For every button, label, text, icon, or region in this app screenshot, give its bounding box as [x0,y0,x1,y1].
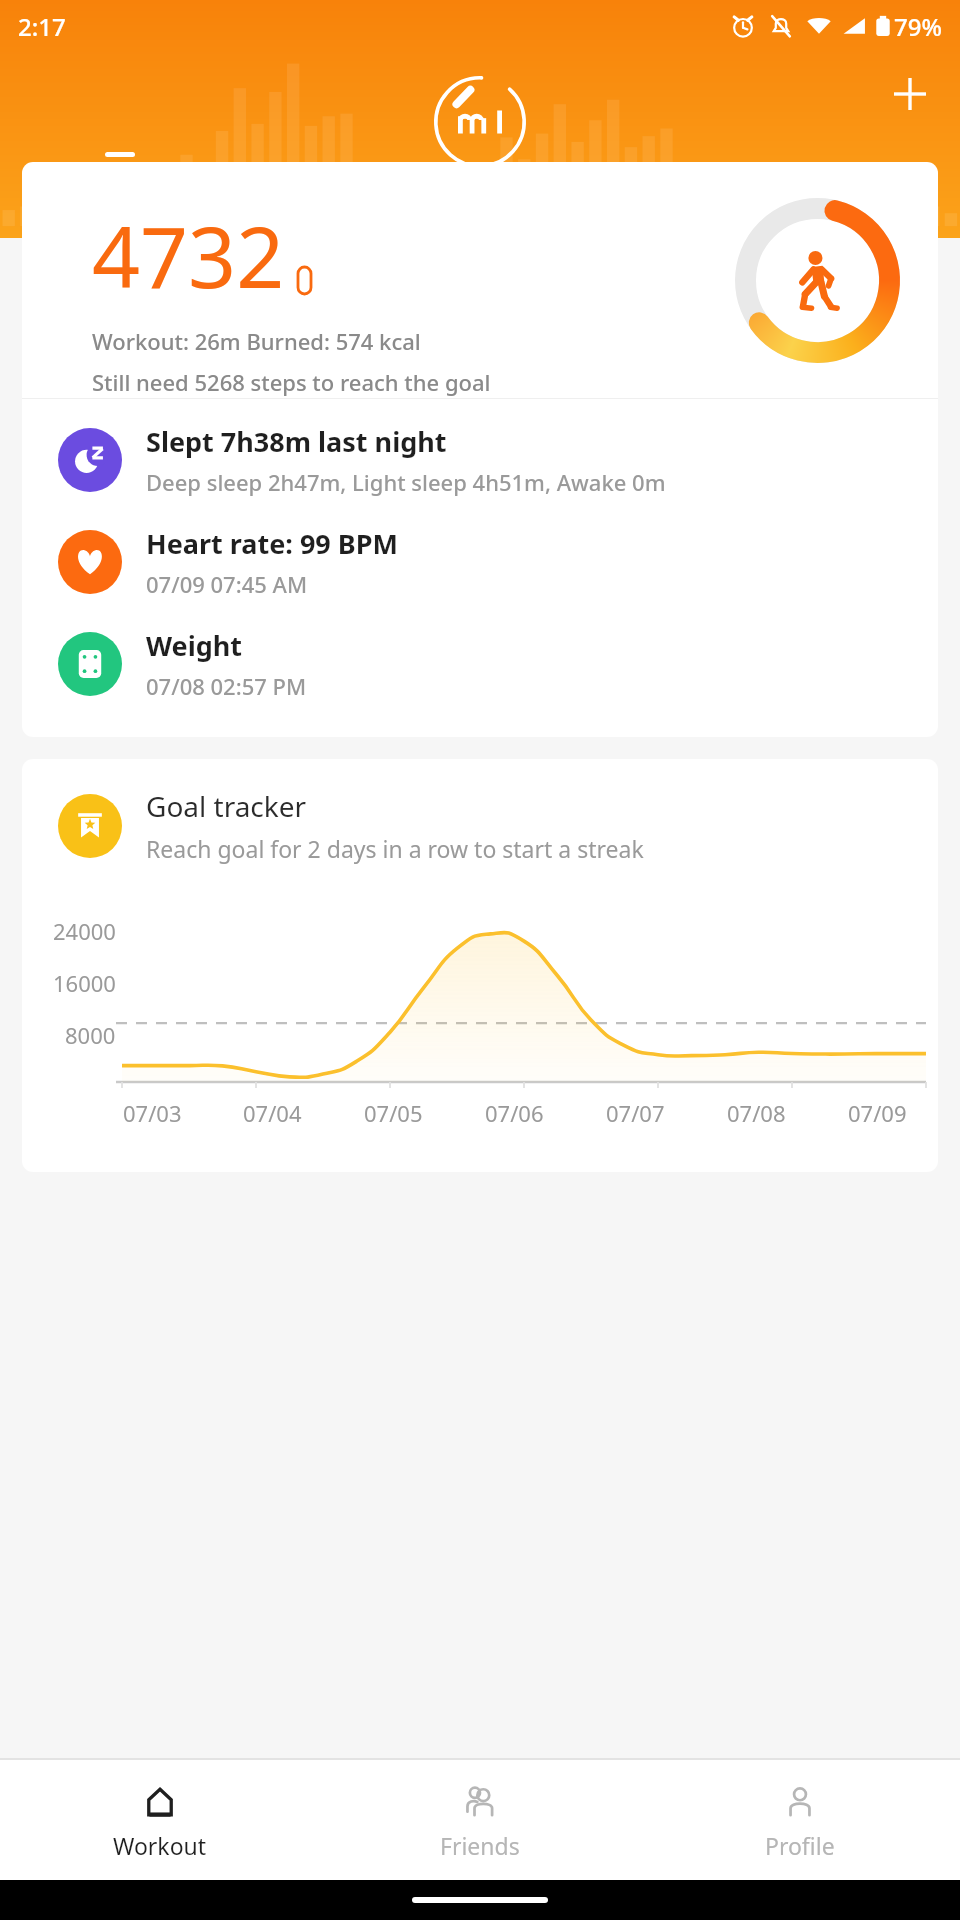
staticText: Heart rate: 99 BPM [146,525,398,562]
staticText: 07/09 07:45 AM [146,569,308,599]
staticText: 07/06 [485,1098,544,1128]
button[interactable]: Heart rate: 99 BPM [22,525,938,599]
staticText: 07/05 [364,1098,423,1128]
button[interactable]: Status [0,152,240,238]
staticText: 07/08 02:57 PM [146,671,307,701]
button[interactable]: Walking [240,152,480,238]
staticText: Still need 5268 steps to reach the goal [92,367,491,397]
staticText: Slept 7h38m last night [146,423,447,460]
staticText: Cycling [803,174,878,204]
button[interactable]: Weight [22,627,938,701]
staticText: Deep sleep 2h47m, Light sleep 4h51m, Awa… [146,467,666,497]
button[interactable]: Goal tracker [22,787,938,864]
staticText: Profile [765,1830,835,1861]
button[interactable]: Workout [0,1760,320,1880]
button[interactable]: Slept 7h38m last night [22,423,938,497]
staticText: Weight [146,627,243,664]
staticText: 16000 [53,968,116,998]
staticText: 07/07 [606,1098,665,1128]
staticText: 07/04 [243,1098,302,1128]
staticText: 07/03 [123,1098,182,1128]
staticText: 07/09 [848,1098,907,1128]
staticText: Goal tracker [146,787,307,825]
staticText: 79% [894,10,942,43]
staticText: Workout: 26m Burned: 574 kcal [92,326,421,356]
staticText: Workout [113,1830,207,1861]
staticText: 24000 [53,916,116,946]
button[interactable]: Cycling [720,152,960,238]
button[interactable]: Running [480,152,720,238]
button[interactable]: Friends [320,1760,640,1880]
staticText: 07/08 [727,1098,786,1128]
staticText: Friends [440,1830,520,1861]
staticText: 4732 [92,198,285,312]
staticText: 8000 [65,1020,116,1050]
button[interactable]: Profile [640,1760,960,1880]
button[interactable]: Add [878,62,942,126]
staticText: Reach goal for 2 days in a row to start … [146,833,644,864]
staticText: 2:17 [18,10,66,43]
